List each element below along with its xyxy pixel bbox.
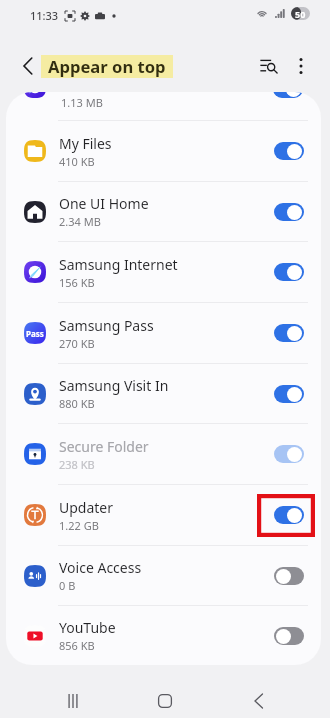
staticText: 50 [295,8,306,20]
staticText: One UI Home [59,194,149,213]
button[interactable]: More options [286,51,315,80]
button[interactable]: Toggle permission [274,445,304,463]
button[interactable]: Updater [6,485,321,545]
staticText: 238 KB [59,457,95,472]
staticText: 11:33 [30,8,59,23]
button[interactable]: Toggle permission [274,324,304,342]
button[interactable]: Toggle permission [274,567,304,585]
button[interactable]: Search [254,51,283,80]
button[interactable]: Home [150,686,180,716]
button[interactable]: Toggle permission [273,92,303,98]
staticText: 880 KB [59,396,95,411]
button[interactable]: Secure Folder [6,424,321,484]
button[interactable]: Toggle permission [274,627,304,645]
button[interactable]: One UI Home [6,182,321,241]
staticText: 156 KB [59,275,95,290]
staticText: 0 B [59,578,76,593]
button[interactable]: Pass [6,303,321,363]
staticText: Secure Folder [59,437,149,456]
staticText: Samsung Visit In [59,376,169,395]
button[interactable]: Toggle permission [274,203,304,221]
staticText: Pass [26,328,44,339]
staticText: Appear on top [48,55,166,78]
button[interactable]: Toggle permission [274,263,304,281]
button[interactable]: Samsung Internet [6,242,321,302]
staticText: Samsung Pass [59,316,154,335]
staticText: Updater [59,498,114,517]
staticText: Samsung Internet [59,255,178,274]
staticText: 270 KB [59,336,95,351]
button[interactable]: Navigate up [13,51,42,80]
staticText: My Files [59,134,112,153]
staticText: YouTube [59,618,116,637]
staticText: 1.22 GB [59,518,99,533]
staticText: Voice Access [59,558,142,577]
button[interactable]: My Files [6,121,321,181]
button[interactable]: Toggle permission [274,142,304,160]
button[interactable]: Back [244,686,274,716]
button[interactable]: Toggle permission [274,385,304,403]
button[interactable]: Samsung Visit In [6,364,321,423]
staticText: 856 KB [59,638,95,653]
staticText: 410 KB [59,154,95,169]
button[interactable]: Voice Access [6,546,321,605]
staticText: 1.13 MB [61,95,103,110]
staticText: 2.34 MB [59,214,101,229]
button[interactable]: Toggle permission [274,506,304,524]
button[interactable]: Recent apps [58,686,88,716]
button[interactable]: YouTube [6,606,321,665]
